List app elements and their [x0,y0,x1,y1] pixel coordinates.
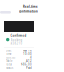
staticText: A12 [26,59,32,63]
staticText: Mar 14 [23,49,32,52]
staticText: Table [6,59,13,63]
staticText: Status [6,66,13,70]
staticText: confirmation [19,10,38,13]
staticText: Confirmed [11,34,27,37]
staticText: Real-time [23,5,38,8]
staticText: Guests [6,56,15,59]
staticText: 4 [30,56,32,59]
staticText: Booking #38210 [11,38,23,45]
staticText: Date [6,49,12,52]
staticText: 10:30 [23,52,32,56]
staticText: Total [6,63,12,66]
staticText: $86.00 [21,63,32,66]
staticText: Time [6,52,12,56]
staticText: Paid [26,66,32,70]
